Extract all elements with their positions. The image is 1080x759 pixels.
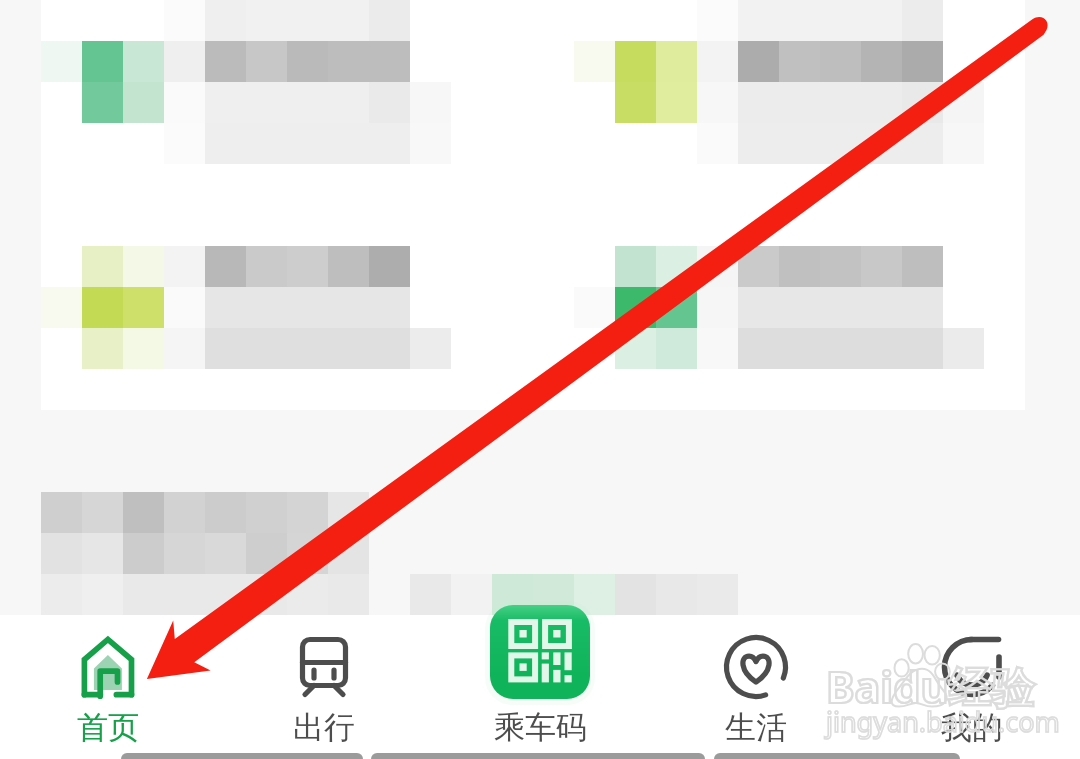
staticText: 乘车码 (494, 708, 587, 747)
staticText: Baidu经验 (826, 657, 1035, 716)
button[interactable]: Travel (216, 615, 432, 759)
button[interactable]: Ride code (432, 615, 648, 759)
button[interactable]: Life (648, 615, 864, 759)
button[interactable]: Home (0, 615, 216, 759)
staticText: 我的 (941, 708, 1003, 747)
staticText: 首页 (77, 708, 139, 747)
staticText: 生活 (725, 708, 787, 747)
staticText: 出行 (293, 708, 355, 747)
staticText: jingyan.baidu.com (826, 703, 1060, 740)
button[interactable]: Mine (864, 615, 1080, 759)
